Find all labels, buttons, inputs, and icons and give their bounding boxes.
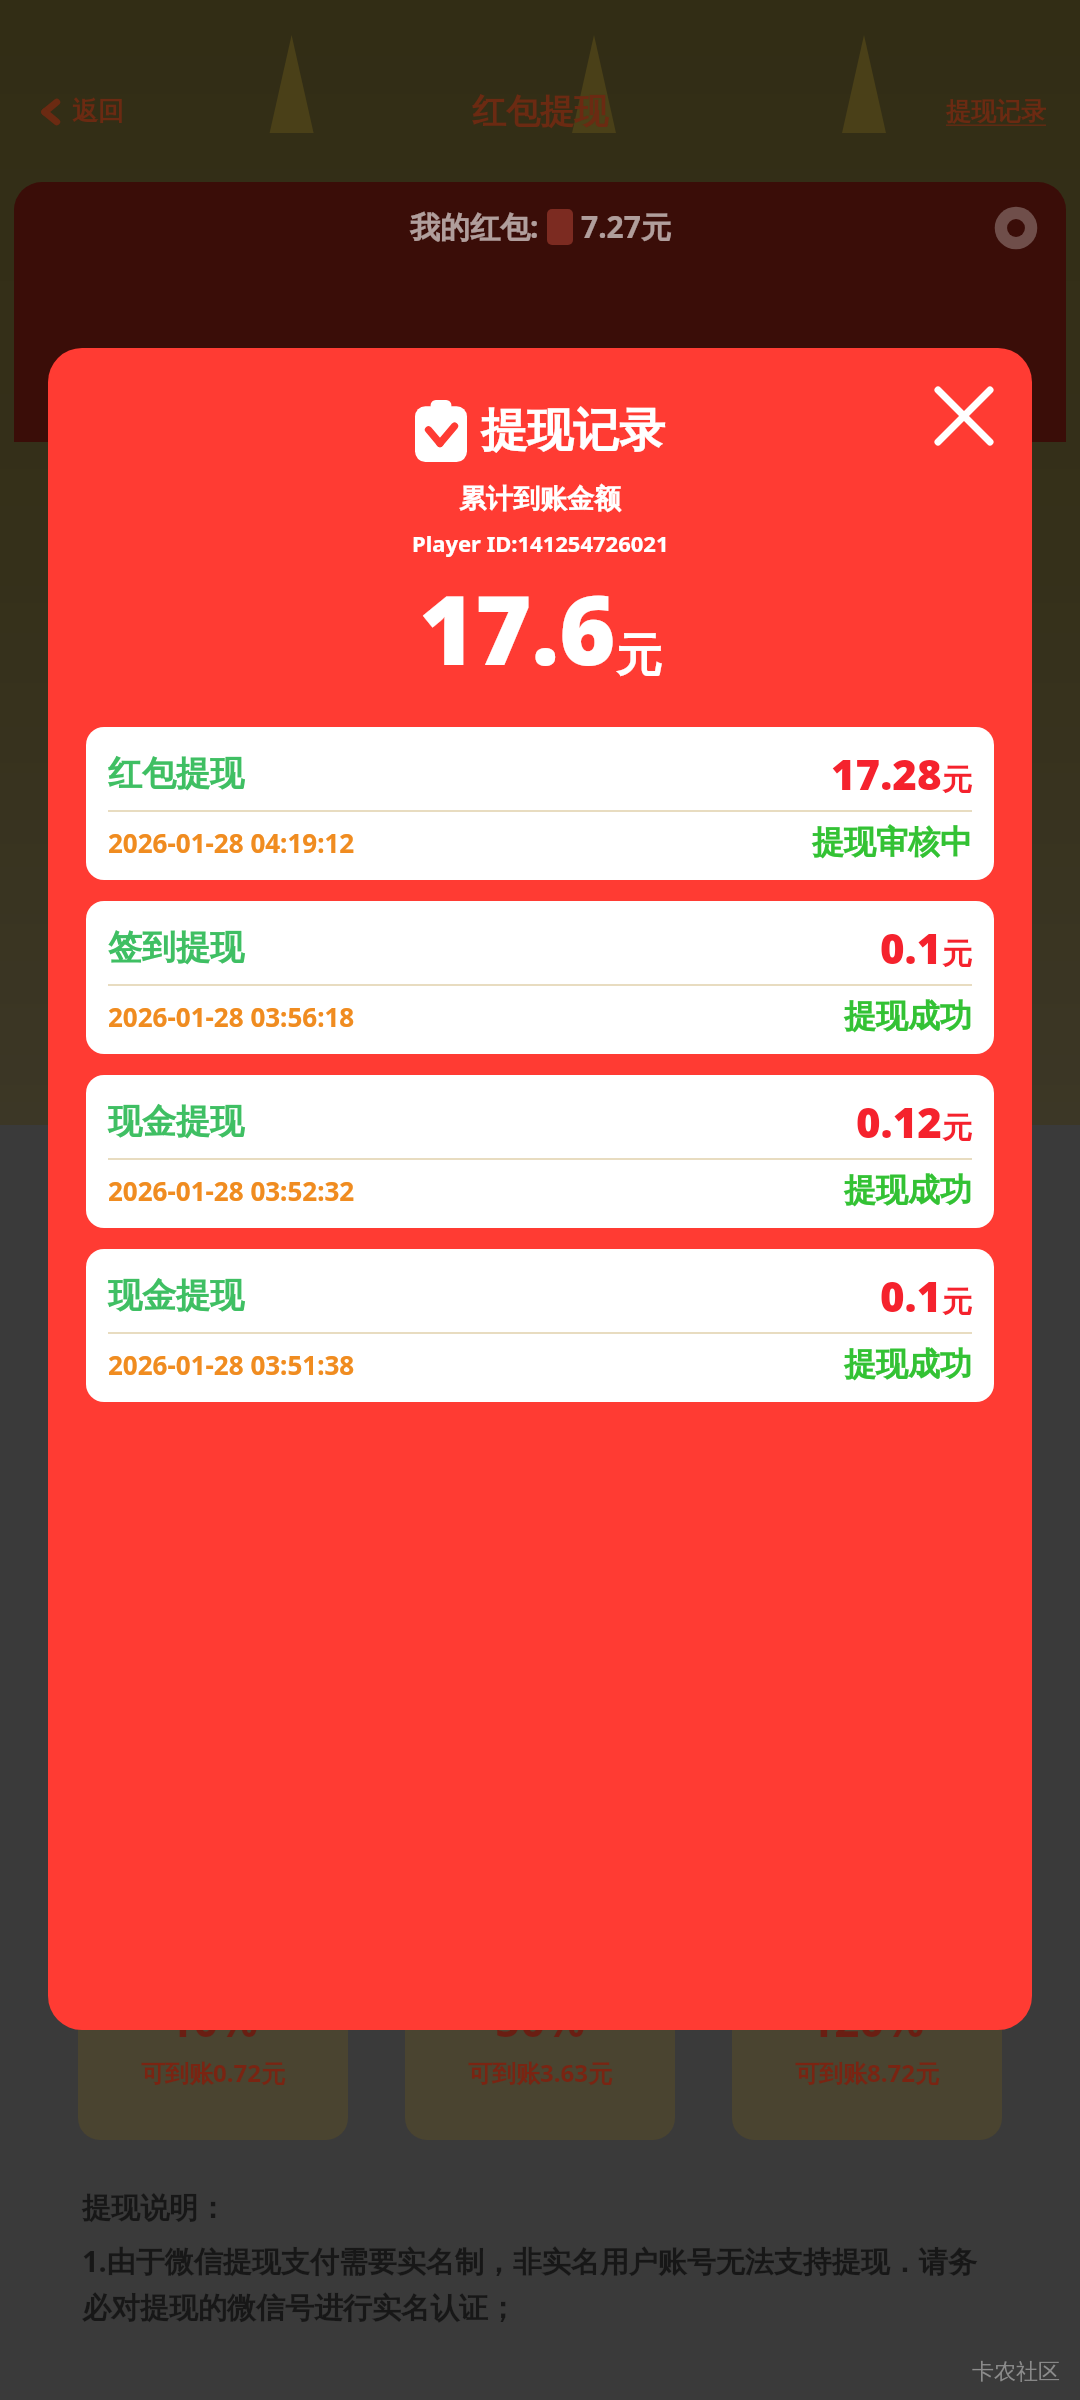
staticText: 返回 (72, 95, 124, 128)
staticText: 卡农社区 (972, 2358, 1060, 2386)
staticText: 红包提现 (108, 752, 244, 795)
staticText: 现金提现 (108, 1100, 244, 1143)
staticText: 元 (942, 761, 972, 799)
staticText: 元 (616, 627, 662, 685)
staticText: 0.1 (880, 919, 942, 976)
button[interactable]: Close (922, 374, 1006, 458)
button[interactable]: 10% (78, 1990, 348, 2140)
staticText: 7.27元 (581, 206, 671, 247)
button[interactable]: 现金提现 (86, 1075, 994, 1228)
staticText: 可到账3.63元 (468, 2056, 612, 2089)
button[interactable]: 签到提现 (86, 901, 994, 1054)
staticText: 0.1 (880, 1267, 942, 1324)
staticText: 2026-01-28 03:56:18 (108, 999, 355, 1034)
staticText: 120% (809, 1990, 925, 2050)
button[interactable]: 现金提现 (86, 1249, 994, 1402)
button[interactable]: 红包提现 (86, 727, 994, 880)
button[interactable]: 提现记录 (940, 90, 1052, 133)
staticText: 提现成功 (844, 1344, 972, 1384)
button[interactable]: Settings (988, 200, 1044, 256)
staticText: 我的红包: (410, 206, 539, 247)
staticText: 2026-01-28 04:19:12 (108, 825, 355, 860)
staticText: 提现记录 (946, 96, 1046, 127)
button[interactable]: 返回 (30, 87, 132, 136)
staticText: 提现成功 (844, 996, 972, 1036)
button[interactable]: 120% (732, 1990, 1002, 2140)
staticText: 50% (495, 1990, 586, 2050)
staticText: 2026-01-28 03:52:32 (108, 1173, 355, 1208)
staticText: 提现审核中 (812, 822, 972, 862)
staticText: 提现记录 (481, 402, 665, 460)
staticText: 2026-01-28 03:51:38 (108, 1347, 355, 1382)
staticText: 提现说明： (82, 2190, 227, 2227)
staticText: 0.12 (856, 1093, 942, 1150)
staticText: 1.由于微信提现支付需要实名制，非实名用户账号无法支持提现．请务必对提现的微信号… (82, 2241, 998, 2327)
staticText: 17.6 (419, 562, 616, 693)
staticText: 可到账8.72元 (795, 2056, 939, 2089)
staticText: 提现成功 (844, 1170, 972, 1210)
staticText: 元 (942, 1109, 972, 1147)
button[interactable]: 50% (405, 1990, 675, 2140)
staticText: 元 (942, 935, 972, 973)
staticText: 可到账0.72元 (141, 2056, 285, 2089)
staticText: 元 (942, 1283, 972, 1321)
staticText: 17.28 (831, 745, 942, 802)
staticText: 红包提现 (472, 90, 608, 133)
staticText: Player ID:141254726021 (412, 528, 669, 558)
staticText: 签到提现 (108, 926, 244, 969)
staticText: 10% (168, 1990, 259, 2050)
staticText: 累计到账金额 (459, 482, 621, 516)
staticText: 现金提现 (108, 1274, 244, 1317)
